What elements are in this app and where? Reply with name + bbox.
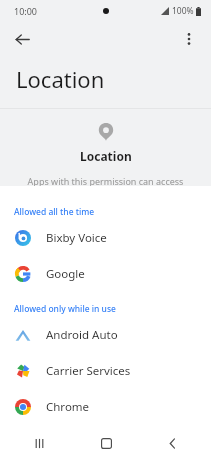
staticText: 10:00 [14, 5, 38, 17]
button[interactable]: More options [173, 23, 205, 55]
button[interactable]: Back [155, 428, 189, 458]
button[interactable]: Bixby Voice [0, 220, 211, 256]
staticText: 100% [172, 5, 194, 17]
button[interactable]: Chrome [0, 389, 211, 425]
button[interactable]: Back [6, 23, 38, 55]
staticText: Location [80, 148, 132, 164]
staticText: Carrier Services [46, 363, 131, 379]
staticText: Location [16, 64, 105, 94]
button[interactable]: Home [89, 428, 123, 458]
button[interactable]: Recent apps [22, 428, 56, 458]
staticText: Google [46, 266, 85, 282]
button[interactable]: Android Auto [0, 317, 211, 353]
staticText: Bixby Voice [46, 230, 107, 246]
staticText: Apps with this permission can access thi… [22, 175, 189, 186]
staticText: Allowed only while in use [14, 303, 116, 315]
staticText: Allowed all the time [14, 206, 95, 218]
button[interactable]: Carrier Services [0, 353, 211, 389]
staticText: Chrome [46, 399, 90, 415]
staticText: Android Auto [46, 327, 118, 343]
button[interactable]: Google [0, 256, 211, 292]
